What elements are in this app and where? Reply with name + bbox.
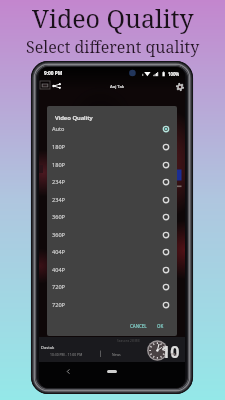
- button[interactable]: 404P: [47, 261, 177, 279]
- button[interactable]: Preview: [40, 81, 50, 89]
- staticText: 720P: [52, 301, 65, 309]
- staticText: 360P: [52, 213, 65, 221]
- button[interactable]: OK: [155, 321, 166, 331]
- staticText: 9:00 PM: [44, 70, 63, 77]
- staticText: Dastak: [41, 345, 55, 350]
- button[interactable]: Home: [107, 370, 117, 373]
- button[interactable]: 720P: [47, 296, 177, 314]
- staticText: Video Quality: [55, 114, 93, 122]
- staticText: 404P: [52, 248, 65, 256]
- staticText: PM: [171, 352, 178, 357]
- button[interactable]: 234P: [47, 191, 177, 209]
- button[interactable]: Back: [64, 367, 73, 376]
- staticText: 10:30 PM - 11:00 PM: [50, 352, 83, 357]
- staticText: News: [112, 352, 121, 357]
- button[interactable]: 180P: [47, 156, 177, 174]
- button[interactable]: CANCEL: [128, 321, 149, 331]
- staticText: 234P: [52, 196, 65, 204]
- staticText: 360P: [52, 231, 65, 239]
- staticText: 180P: [52, 161, 65, 169]
- button[interactable]: 404P: [47, 243, 177, 261]
- button[interactable]: 180P: [47, 138, 177, 156]
- staticText: Seasons 28 MB: [117, 339, 140, 343]
- staticText: Auto: [52, 125, 65, 133]
- staticText: 404P: [52, 266, 65, 274]
- staticText: Video Quality: [32, 1, 194, 35]
- button[interactable]: Auto: [47, 120, 177, 138]
- button[interactable]: 360P: [47, 208, 177, 226]
- button[interactable]: Settings: [176, 83, 184, 91]
- staticText: 180P: [52, 143, 65, 151]
- staticText: 10: [161, 341, 180, 363]
- button[interactable]: 234P: [47, 173, 177, 191]
- staticText: 720P: [52, 283, 65, 291]
- staticText: Aaj Tak: [110, 84, 125, 90]
- button[interactable]: Share: [52, 83, 61, 89]
- staticText: Select different quality: [26, 36, 200, 58]
- staticText: 234P: [52, 178, 65, 186]
- button[interactable]: 360P: [47, 226, 177, 244]
- staticText: 100%: [168, 71, 180, 77]
- button[interactable]: 720P: [47, 278, 177, 296]
